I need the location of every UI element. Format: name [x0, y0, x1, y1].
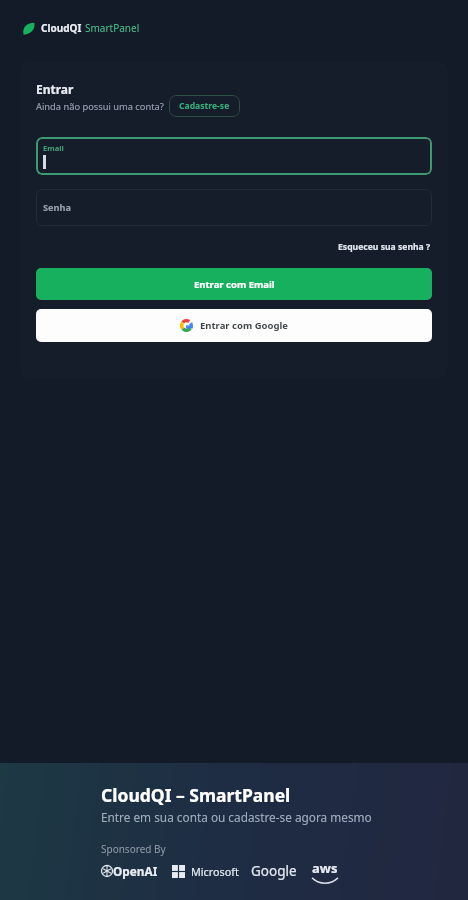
staticText: Cadastre-se — [179, 100, 230, 112]
staticText: CloudQI – SmartPanel — [101, 783, 291, 807]
button[interactable]: CloudQI SmartPanel home — [22, 21, 140, 35]
staticText: SmartPanel — [85, 21, 140, 35]
staticText: Entrar com Email — [194, 278, 275, 291]
staticText: Microsoft — [191, 864, 239, 879]
staticText: Sponsored By — [101, 842, 166, 856]
staticText: Entre em sua conta ou cadastre-se agora … — [101, 809, 372, 825]
staticText: Email — [43, 143, 64, 153]
staticText: Esqueceu sua senha ? — [338, 241, 431, 253]
button[interactable]: Email input field — [36, 137, 432, 175]
button[interactable]: Entrar com Google — [36, 309, 432, 342]
staticText: aws — [312, 859, 338, 877]
button[interactable]: Cadastre-se — [169, 95, 240, 117]
staticText: Senha — [43, 201, 71, 214]
button[interactable]: Senha input field — [36, 189, 432, 226]
staticText: Ainda não possui uma conta? — [36, 100, 164, 113]
staticText: OpenAI — [113, 863, 158, 879]
button[interactable]: Entrar com Email — [36, 268, 432, 300]
staticText: Entrar — [36, 81, 74, 95]
staticText: CloudQI — [41, 21, 82, 35]
staticText: Google — [251, 862, 297, 880]
button[interactable]: Esqueceu sua senha ? — [337, 239, 432, 255]
staticText: Entrar com Google — [200, 319, 288, 332]
